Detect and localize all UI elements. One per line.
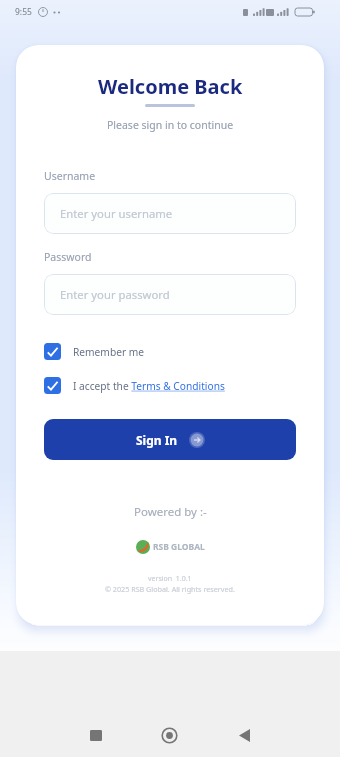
- button[interactable]: Back: [223, 714, 265, 756]
- button[interactable]: Recent apps: [75, 714, 117, 756]
- staticText: RSB GLOBAL: [153, 541, 205, 553]
- staticText: Welcome Back: [98, 73, 243, 100]
- button[interactable]: Enter your password: [44, 274, 296, 315]
- staticText: Sign In: [136, 432, 178, 448]
- staticText: I accept the Terms & Conditions: [73, 379, 225, 393]
- button[interactable]: I accept the Terms & Conditions: [44, 377, 225, 394]
- staticText: version 1.0.1: [148, 574, 192, 584]
- button[interactable]: Remember me: [44, 343, 145, 360]
- staticText: Password: [44, 250, 92, 264]
- staticText: Enter your password: [60, 287, 170, 302]
- staticText: Powered by :-: [134, 504, 207, 520]
- staticText: 9:55: [15, 6, 32, 18]
- staticText: Enter your username: [60, 206, 173, 221]
- staticText: Remember me: [73, 345, 145, 359]
- button[interactable]: Enter your username: [44, 193, 296, 234]
- button[interactable]: Sign In: [44, 419, 296, 460]
- button[interactable]: Home: [148, 714, 190, 756]
- staticText: © 2025 RSB Global. All rights reserved.: [105, 584, 235, 594]
- staticText: Please sign in to continue: [107, 118, 234, 132]
- staticText: Username: [44, 169, 96, 183]
